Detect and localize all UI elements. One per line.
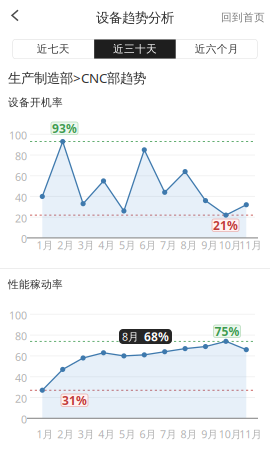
button[interactable]: Back (4, 4, 26, 26)
staticText: 回到首页 (221, 11, 265, 24)
staticText: 40 (15, 371, 27, 385)
staticText: 20 (15, 211, 27, 225)
staticText: 100 (9, 128, 27, 142)
staticText: 2月 (57, 238, 74, 252)
button[interactable]: 近七天 (12, 39, 94, 59)
staticText: 3月 (78, 238, 95, 252)
staticText: 0 (21, 232, 27, 246)
button[interactable]: 近六个月 (176, 39, 257, 59)
staticText: 11月 (239, 238, 262, 252)
staticText: 9月 (201, 427, 218, 441)
staticText: 80 (15, 149, 27, 163)
staticText: 20 (15, 391, 27, 406)
staticText: 2月 (57, 427, 74, 441)
staticText: 8月 (181, 427, 198, 441)
staticText: 8月 (181, 238, 198, 252)
staticText: 80 (15, 329, 27, 343)
staticText: 5月 (119, 427, 136, 441)
staticText: 11月 (239, 427, 262, 441)
staticText: 68% (144, 328, 169, 344)
staticText: 7月 (160, 238, 177, 252)
staticText: 31% (62, 392, 87, 408)
staticText: 10月 (219, 427, 242, 441)
staticText: 生产制造部>CNC部趋势 (8, 69, 146, 87)
staticText: 6月 (139, 427, 156, 441)
staticText: 4月 (98, 238, 115, 252)
staticText: 3月 (78, 427, 95, 441)
button[interactable]: 近三十天 (94, 39, 176, 59)
staticText: 0 (21, 412, 27, 426)
staticText: 性能稼动率 (8, 278, 63, 291)
staticText: 设备趋势分析 (96, 9, 174, 26)
staticText: 10月 (219, 238, 242, 252)
staticText: 60 (15, 350, 27, 364)
staticText: 5月 (119, 238, 136, 252)
staticText: 93% (52, 120, 77, 136)
staticText: 40 (15, 190, 27, 205)
staticText: 8月 (122, 329, 139, 344)
staticText: 4月 (98, 427, 115, 441)
staticText: 设备开机率 (8, 96, 63, 109)
staticText: 75% (214, 323, 239, 339)
staticText: 100 (9, 308, 27, 322)
staticText: 6月 (139, 238, 156, 252)
staticText: 近七天 (37, 42, 70, 55)
button[interactable]: 回到首页 (217, 6, 269, 29)
staticText: 7月 (160, 427, 177, 441)
staticText: 60 (15, 170, 27, 184)
staticText: 近六个月 (195, 42, 239, 55)
staticText: 1月 (37, 238, 54, 252)
staticText: 1月 (37, 427, 54, 441)
staticText: 近三十天 (113, 42, 157, 55)
staticText: 21% (213, 217, 238, 233)
staticText: 9月 (201, 238, 218, 252)
